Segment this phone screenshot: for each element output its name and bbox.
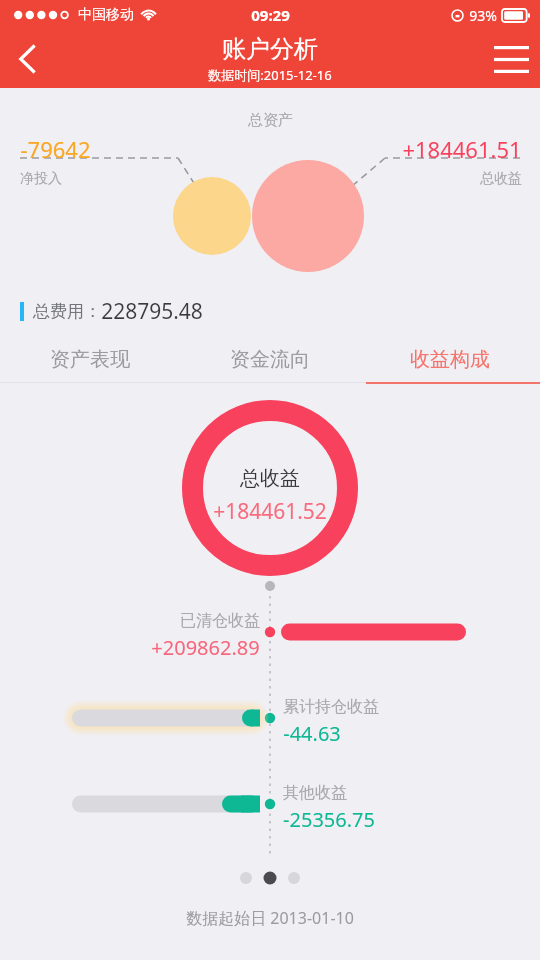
staticText: 09:29	[251, 5, 290, 25]
staticText: 总费用：	[33, 301, 101, 322]
staticText: 总资产	[248, 111, 293, 130]
staticText: 净投入	[20, 170, 62, 188]
staticText: 93%	[469, 6, 497, 25]
button[interactable]: 资金流向	[180, 336, 360, 382]
staticText: +184461.51	[402, 134, 522, 164]
staticText: 累计持仓收益	[283, 697, 379, 717]
staticText: 资金流向	[230, 347, 310, 372]
staticText: 已清仓收益	[180, 611, 260, 631]
staticText: 数据起始日 2013-01-10	[186, 907, 354, 929]
staticText: +209862.89	[151, 634, 260, 661]
staticText: 总收益	[240, 466, 300, 491]
staticText: 总收益	[480, 170, 522, 188]
button[interactable]: 资产表现	[0, 336, 180, 382]
staticText: 其他收益	[283, 783, 347, 803]
staticText: -79642	[20, 134, 91, 164]
staticText: 228795.48	[101, 297, 203, 326]
button[interactable]: Back	[0, 30, 54, 88]
staticText: 中国移动	[78, 6, 134, 24]
button[interactable]: Menu	[482, 30, 540, 88]
staticText: -44.63	[283, 720, 341, 747]
staticText: 数据时间:2015-12-16	[208, 66, 332, 84]
staticText: 账户分析	[222, 34, 318, 64]
staticText: 资产表现	[50, 347, 130, 372]
staticText: -25356.75	[283, 806, 375, 833]
staticText: +184461.52	[213, 497, 327, 526]
staticText: 收益构成	[410, 347, 490, 372]
button[interactable]: 收益构成	[360, 336, 540, 382]
